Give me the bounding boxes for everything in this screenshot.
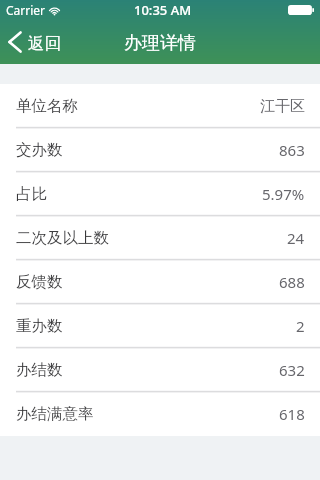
staticText: 江干区 bbox=[260, 97, 305, 116]
staticText: 单位名称 bbox=[16, 96, 78, 116]
staticText: 办结满意率 bbox=[16, 404, 94, 424]
staticText: 863 bbox=[279, 140, 305, 160]
staticText: 重办数 bbox=[16, 316, 63, 336]
staticText: 688 bbox=[279, 272, 305, 292]
button[interactable]: 占比 bbox=[0, 172, 320, 216]
staticText: 632 bbox=[279, 360, 305, 380]
staticText: 2 bbox=[296, 316, 305, 336]
button[interactable]: 办结满意率 bbox=[0, 392, 320, 436]
staticText: 办结数 bbox=[16, 360, 63, 380]
button[interactable]: 单位名称 bbox=[0, 84, 320, 128]
staticText: 618 bbox=[279, 404, 305, 424]
staticText: 二次及以上数 bbox=[16, 228, 109, 248]
staticText: 占比 bbox=[16, 184, 47, 204]
button[interactable]: Back bbox=[0, 20, 71, 64]
button[interactable]: 办结数 bbox=[0, 348, 320, 392]
button[interactable]: 重办数 bbox=[0, 304, 320, 348]
staticText: 5.97% bbox=[262, 184, 305, 204]
staticText: 办理详情 bbox=[124, 32, 196, 55]
button[interactable]: 二次及以上数 bbox=[0, 216, 320, 260]
staticText: 10:35 AM bbox=[134, 1, 192, 19]
staticText: Carrier bbox=[6, 2, 46, 18]
other: Back bbox=[8, 31, 22, 53]
staticText: 24 bbox=[287, 228, 305, 248]
button[interactable]: 交办数 bbox=[0, 128, 320, 172]
staticText: 交办数 bbox=[16, 140, 63, 160]
other: Wi-Fi bbox=[49, 6, 60, 15]
staticText: 返回 bbox=[28, 33, 61, 54]
staticText: 反馈数 bbox=[16, 272, 63, 292]
button[interactable]: 反馈数 bbox=[0, 260, 320, 304]
other: Battery bbox=[288, 5, 314, 15]
